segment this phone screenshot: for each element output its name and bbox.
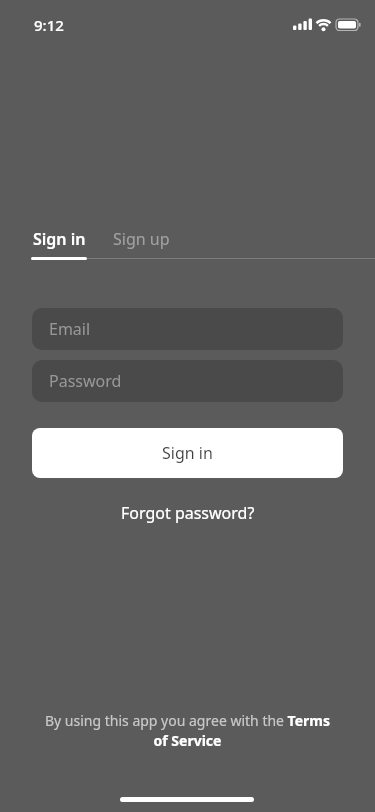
staticText: Sign in: [33, 228, 86, 250]
staticText: Forgot password?: [121, 502, 255, 524]
staticText: Email: [49, 318, 91, 340]
button[interactable]: Forgot password?: [115, 496, 261, 530]
staticText: 9:12: [34, 15, 64, 35]
button[interactable]: Password: [32, 360, 343, 402]
button[interactable]: Sign up: [107, 222, 176, 256]
button[interactable]: By using this app you agree with the Ter…: [32, 711, 343, 750]
staticText: Password: [49, 370, 122, 392]
staticText: By using this app you agree with the Ter…: [32, 711, 343, 750]
button[interactable]: Sign in: [32, 428, 343, 478]
staticText: Sign in: [162, 442, 213, 464]
button[interactable]: Email: [32, 308, 343, 350]
button[interactable]: Sign in: [27, 222, 92, 256]
staticText: Sign up: [113, 228, 170, 250]
